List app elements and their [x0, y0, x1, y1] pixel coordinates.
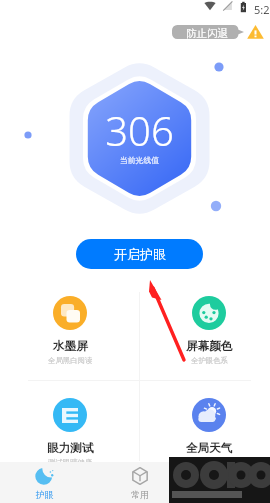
button[interactable]: 常用 — [110, 463, 170, 503]
staticText: 测试眼睛健康 — [48, 458, 93, 467]
staticText: 水墨屏 — [53, 339, 88, 354]
button[interactable]: 开启护眼 — [76, 239, 203, 269]
staticText: 5:2 — [254, 2, 270, 17]
button[interactable]: 水墨屏 — [15, 292, 125, 368]
staticText: 全护眼色系 — [191, 356, 228, 365]
button[interactable]: 我的 — [204, 463, 264, 503]
staticText: 眼力测试 — [47, 441, 94, 456]
staticText: 屏幕颜色 — [186, 339, 233, 354]
staticText: 开启护眼 — [114, 246, 166, 262]
staticText: 全局天气 — [186, 441, 233, 456]
staticText: 常用 — [131, 489, 149, 500]
button[interactable]: 防止闪退 — [172, 25, 244, 39]
button[interactable]: 屏幕颜色 — [154, 292, 264, 368]
staticText: 护眼 — [36, 489, 54, 500]
staticText: 当前光线值 — [120, 155, 159, 165]
staticText: 全局黑白阅读 — [48, 356, 93, 365]
staticText: 防止闪退 — [186, 27, 228, 40]
staticText: 我的 — [225, 489, 243, 500]
button[interactable]: 全局天气 — [154, 394, 264, 470]
button[interactable]: 护眼 — [15, 463, 75, 503]
staticText: 306 — [105, 103, 174, 157]
button[interactable]: 眼力测试 — [15, 394, 125, 470]
button[interactable]: Warning — [247, 24, 264, 40]
staticText: 全国实时天气 — [187, 458, 232, 467]
